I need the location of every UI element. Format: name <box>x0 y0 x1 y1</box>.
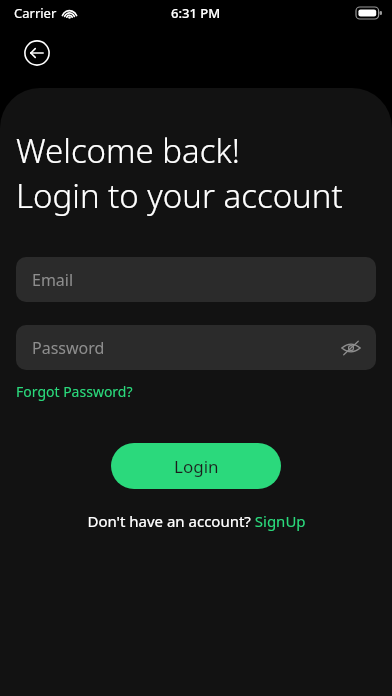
staticText: Login <box>174 455 219 478</box>
button[interactable]: Forgot Password? <box>16 382 133 401</box>
button[interactable]: Back <box>24 40 50 66</box>
staticText: Welcome back! <box>16 128 240 173</box>
staticText: Password <box>32 337 105 359</box>
staticText: Email <box>32 269 74 291</box>
button[interactable]: Don't have an account? SignUp <box>87 511 306 531</box>
staticText: Forgot Password? <box>16 382 133 401</box>
staticText: Carrier <box>14 4 57 22</box>
button[interactable]: Show password <box>336 333 366 363</box>
button[interactable]: Email <box>16 257 376 302</box>
staticText: Login to your account <box>16 173 343 218</box>
button[interactable]: Login <box>111 443 281 489</box>
staticText: Don't have an account? SignUp <box>87 511 306 531</box>
staticText: 6:31 PM <box>171 4 221 22</box>
button[interactable]: Password <box>16 325 376 370</box>
